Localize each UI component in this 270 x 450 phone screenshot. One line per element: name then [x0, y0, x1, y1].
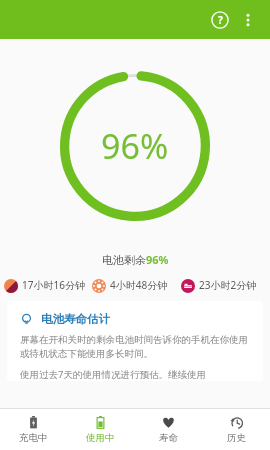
staticText: 充电中 — [19, 432, 48, 444]
staticText: 17小时16分钟 — [22, 278, 85, 292]
button[interactable]: 使用中 — [67, 409, 134, 450]
button[interactable]: 17小时16分钟 — [2, 276, 90, 295]
button[interactable]: 寿命 — [134, 409, 202, 450]
staticText: 寿命 — [159, 432, 178, 444]
button[interactable]: 4小时48分钟 — [90, 276, 179, 295]
staticText: 电池剩余96% — [102, 252, 169, 267]
staticText: 电池寿命估计 — [41, 312, 110, 326]
button[interactable]: 电池寿命估计 — [7, 301, 263, 381]
staticText: ? — [218, 13, 223, 27]
button[interactable]: More options — [233, 5, 263, 35]
button[interactable]: 充电中 — [0, 409, 67, 450]
button[interactable]: 23小时2分钟 — [179, 276, 268, 295]
staticText: 使用中 — [86, 432, 115, 444]
button[interactable]: 历史 — [202, 409, 270, 450]
staticText: 屏幕在开和关时的剩余电池时间告诉你的手机在你使用或待机状态下能使用多长时间。 — [20, 334, 251, 360]
staticText: 历史 — [227, 432, 246, 444]
button[interactable]: Help — [204, 4, 236, 36]
staticText: 4小时48分钟 — [110, 278, 168, 292]
staticText: 23小时2分钟 — [199, 278, 257, 292]
staticText: 96% — [101, 123, 169, 169]
staticText: 使用过去7天的使用情况进行预估。继续使用 — [20, 368, 206, 381]
